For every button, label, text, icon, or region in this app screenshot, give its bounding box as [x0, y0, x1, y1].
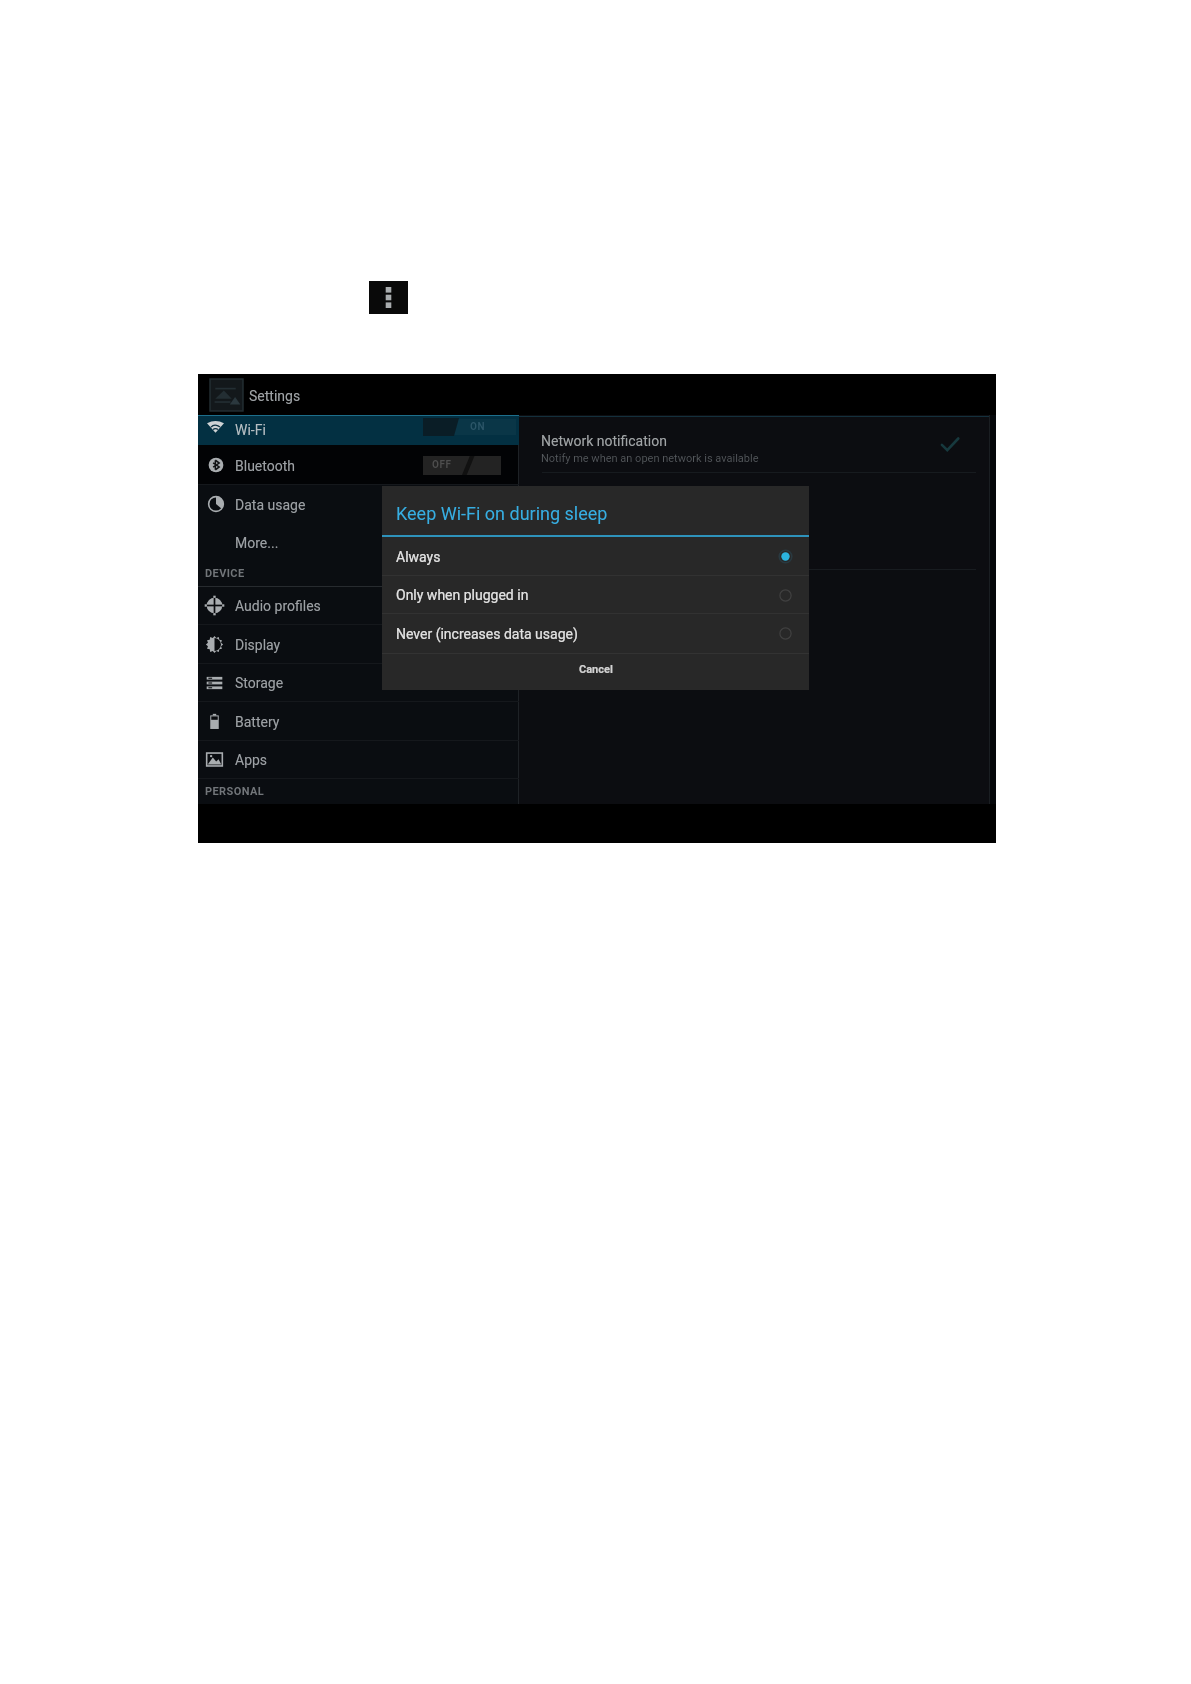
button[interactable] [198, 522, 519, 560]
button[interactable] [198, 444, 519, 483]
button[interactable] [198, 702, 519, 740]
staticText: Never (increases data usage) [396, 626, 578, 642]
staticText: Settings [249, 388, 301, 404]
staticText: Only when plugged in [396, 587, 529, 603]
staticText: Apps [235, 752, 268, 768]
staticText: DEVICE [205, 567, 245, 580]
button[interactable] [198, 625, 519, 663]
staticText: Battery [235, 714, 280, 730]
staticText: ON [470, 421, 485, 433]
staticText: Notify me when an open network is availa… [541, 452, 759, 465]
staticText: More... [235, 535, 279, 551]
button[interactable]: Always [382, 537, 809, 576]
staticText: Wi-Fi [235, 422, 266, 438]
staticText: Display [235, 637, 281, 653]
button[interactable] [198, 740, 519, 778]
button[interactable]: Bluetooth off [423, 456, 501, 475]
button[interactable] [198, 484, 519, 522]
button[interactable]: Cancel [382, 651, 809, 688]
button[interactable]: More options [369, 281, 408, 314]
button[interactable]: Only when plugged in [382, 576, 809, 614]
staticText: Network notification [541, 433, 667, 449]
button[interactable] [198, 416, 519, 445]
staticText: Cancel [579, 663, 613, 676]
staticText: Storage [235, 675, 284, 691]
staticText: Data usage [235, 497, 306, 513]
button[interactable] [198, 586, 519, 624]
staticText: Audio profiles [235, 598, 321, 614]
staticText: Bluetooth [235, 458, 295, 474]
button[interactable]: Wi-Fi on [423, 418, 516, 436]
button[interactable] [198, 663, 519, 701]
staticText: OFF [432, 459, 452, 471]
staticText: PERSONAL [205, 785, 265, 798]
staticText: Keep Wi-Fi on during sleep [396, 503, 608, 524]
staticText: Always [396, 549, 441, 565]
button[interactable]: Never (increases data usage) [382, 614, 809, 653]
button[interactable] [519, 420, 996, 468]
